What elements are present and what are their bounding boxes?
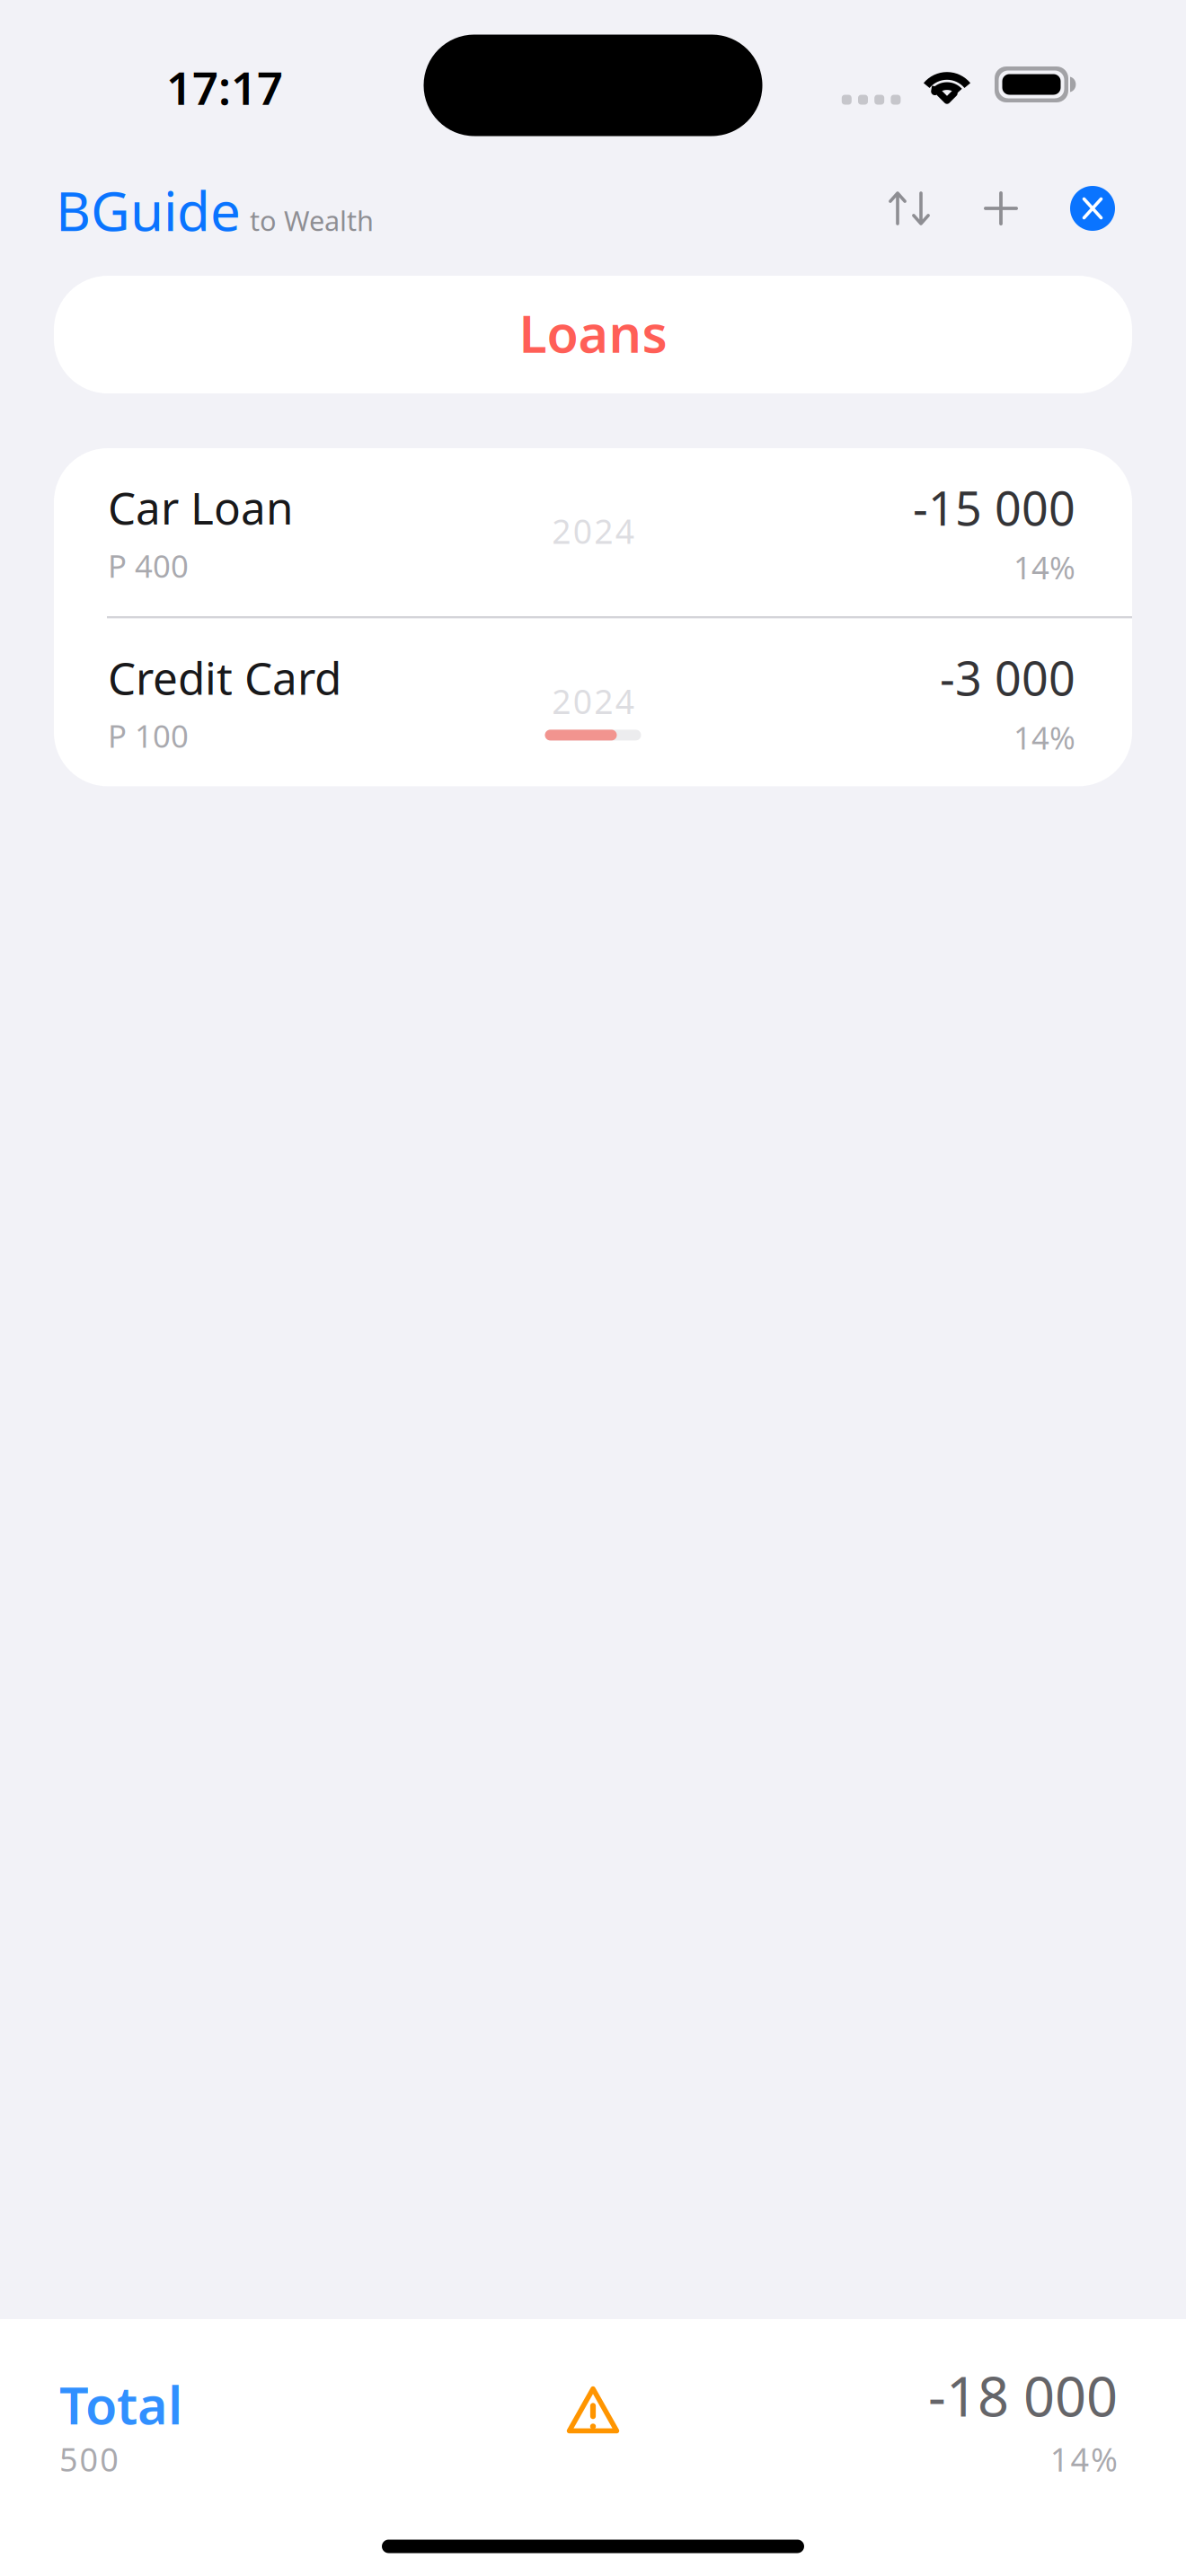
staticText: Car Loan bbox=[108, 478, 293, 537]
staticText: -18 000 bbox=[928, 2359, 1118, 2432]
staticText: Credit Card bbox=[108, 648, 341, 707]
staticText: BGuide bbox=[56, 174, 241, 246]
button[interactable]: Close bbox=[1049, 165, 1136, 251]
staticText: 2024 bbox=[552, 679, 634, 723]
button[interactable]: Credit Card bbox=[54, 618, 1132, 786]
button[interactable]: Add bbox=[958, 165, 1044, 251]
staticText: -3 000 bbox=[940, 647, 1075, 709]
staticText: -15 000 bbox=[913, 476, 1075, 539]
staticText: to Wealth bbox=[250, 202, 374, 239]
staticText: 14% bbox=[1013, 717, 1075, 758]
staticText: Total bbox=[59, 2370, 182, 2439]
button[interactable]: Sort bbox=[867, 165, 953, 251]
staticText: 2024 bbox=[552, 509, 634, 553]
staticText: P 100 bbox=[108, 715, 189, 756]
staticText: 14% bbox=[1050, 2438, 1118, 2481]
staticText: Loans bbox=[519, 299, 667, 367]
staticText: P 400 bbox=[108, 545, 189, 586]
staticText: 500 bbox=[59, 2438, 119, 2481]
staticText: 17:17 bbox=[166, 57, 283, 117]
staticText: 14% bbox=[1013, 547, 1075, 588]
button[interactable]: Car Loan bbox=[54, 448, 1132, 616]
